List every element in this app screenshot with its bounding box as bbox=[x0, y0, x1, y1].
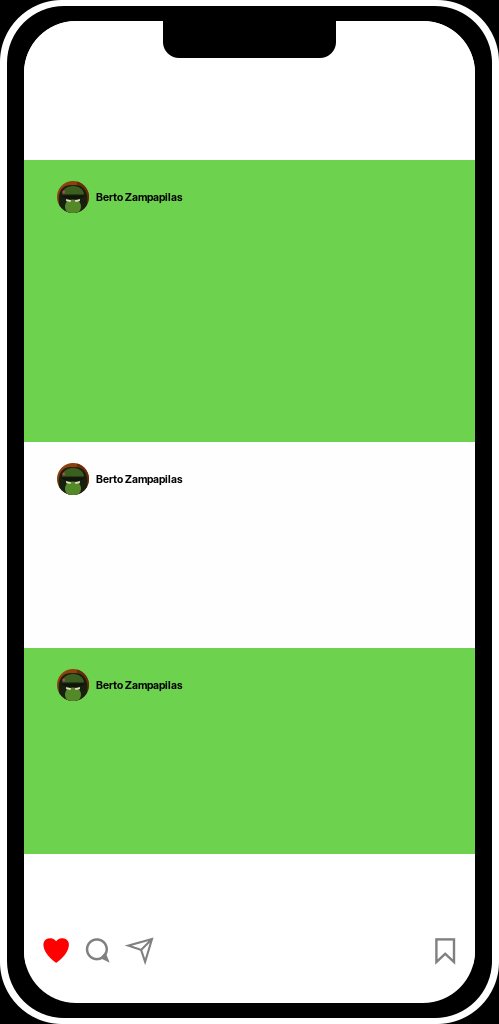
button[interactable]: Share bbox=[126, 937, 154, 963]
button[interactable]: Berto Zampapilas bbox=[24, 669, 475, 701]
staticText: Berto Zampapilas bbox=[96, 678, 183, 691]
button[interactable]: Berto Zampapilas bbox=[24, 181, 475, 213]
button[interactable]: Save bbox=[435, 938, 455, 963]
staticText: Berto Zampapilas bbox=[96, 472, 183, 485]
button[interactable]: Comment bbox=[86, 937, 111, 962]
button[interactable]: Like bbox=[43, 937, 69, 963]
button[interactable]: Berto Zampapilas bbox=[24, 463, 475, 495]
staticText: Berto Zampapilas bbox=[96, 190, 183, 203]
